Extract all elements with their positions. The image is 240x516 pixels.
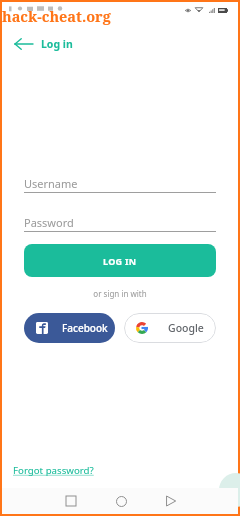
- button[interactable]: LOG IN: [24, 244, 216, 277]
- staticText: Username: [24, 176, 78, 191]
- button[interactable]: Home: [109, 489, 133, 513]
- button[interactable]: Facebook: [24, 313, 115, 343]
- staticText: Google: [168, 321, 204, 335]
- staticText: or sign in with: [24, 288, 216, 299]
- button[interactable]: Recent apps: [59, 489, 83, 513]
- button[interactable]: Forgot password?: [2, 462, 100, 488]
- button[interactable]: Password: [24, 215, 216, 232]
- button[interactable]: Back: [159, 489, 183, 513]
- staticText: Log in: [41, 37, 73, 51]
- staticText: LOG IN: [103, 255, 137, 267]
- staticText: Facebook: [62, 321, 108, 335]
- button[interactable]: Username: [24, 176, 216, 193]
- staticText: Password: [24, 215, 74, 230]
- button[interactable]: Google: [124, 313, 216, 343]
- button[interactable]: Back: [12, 33, 34, 55]
- staticText: hack-cheat.org: [2, 6, 111, 26]
